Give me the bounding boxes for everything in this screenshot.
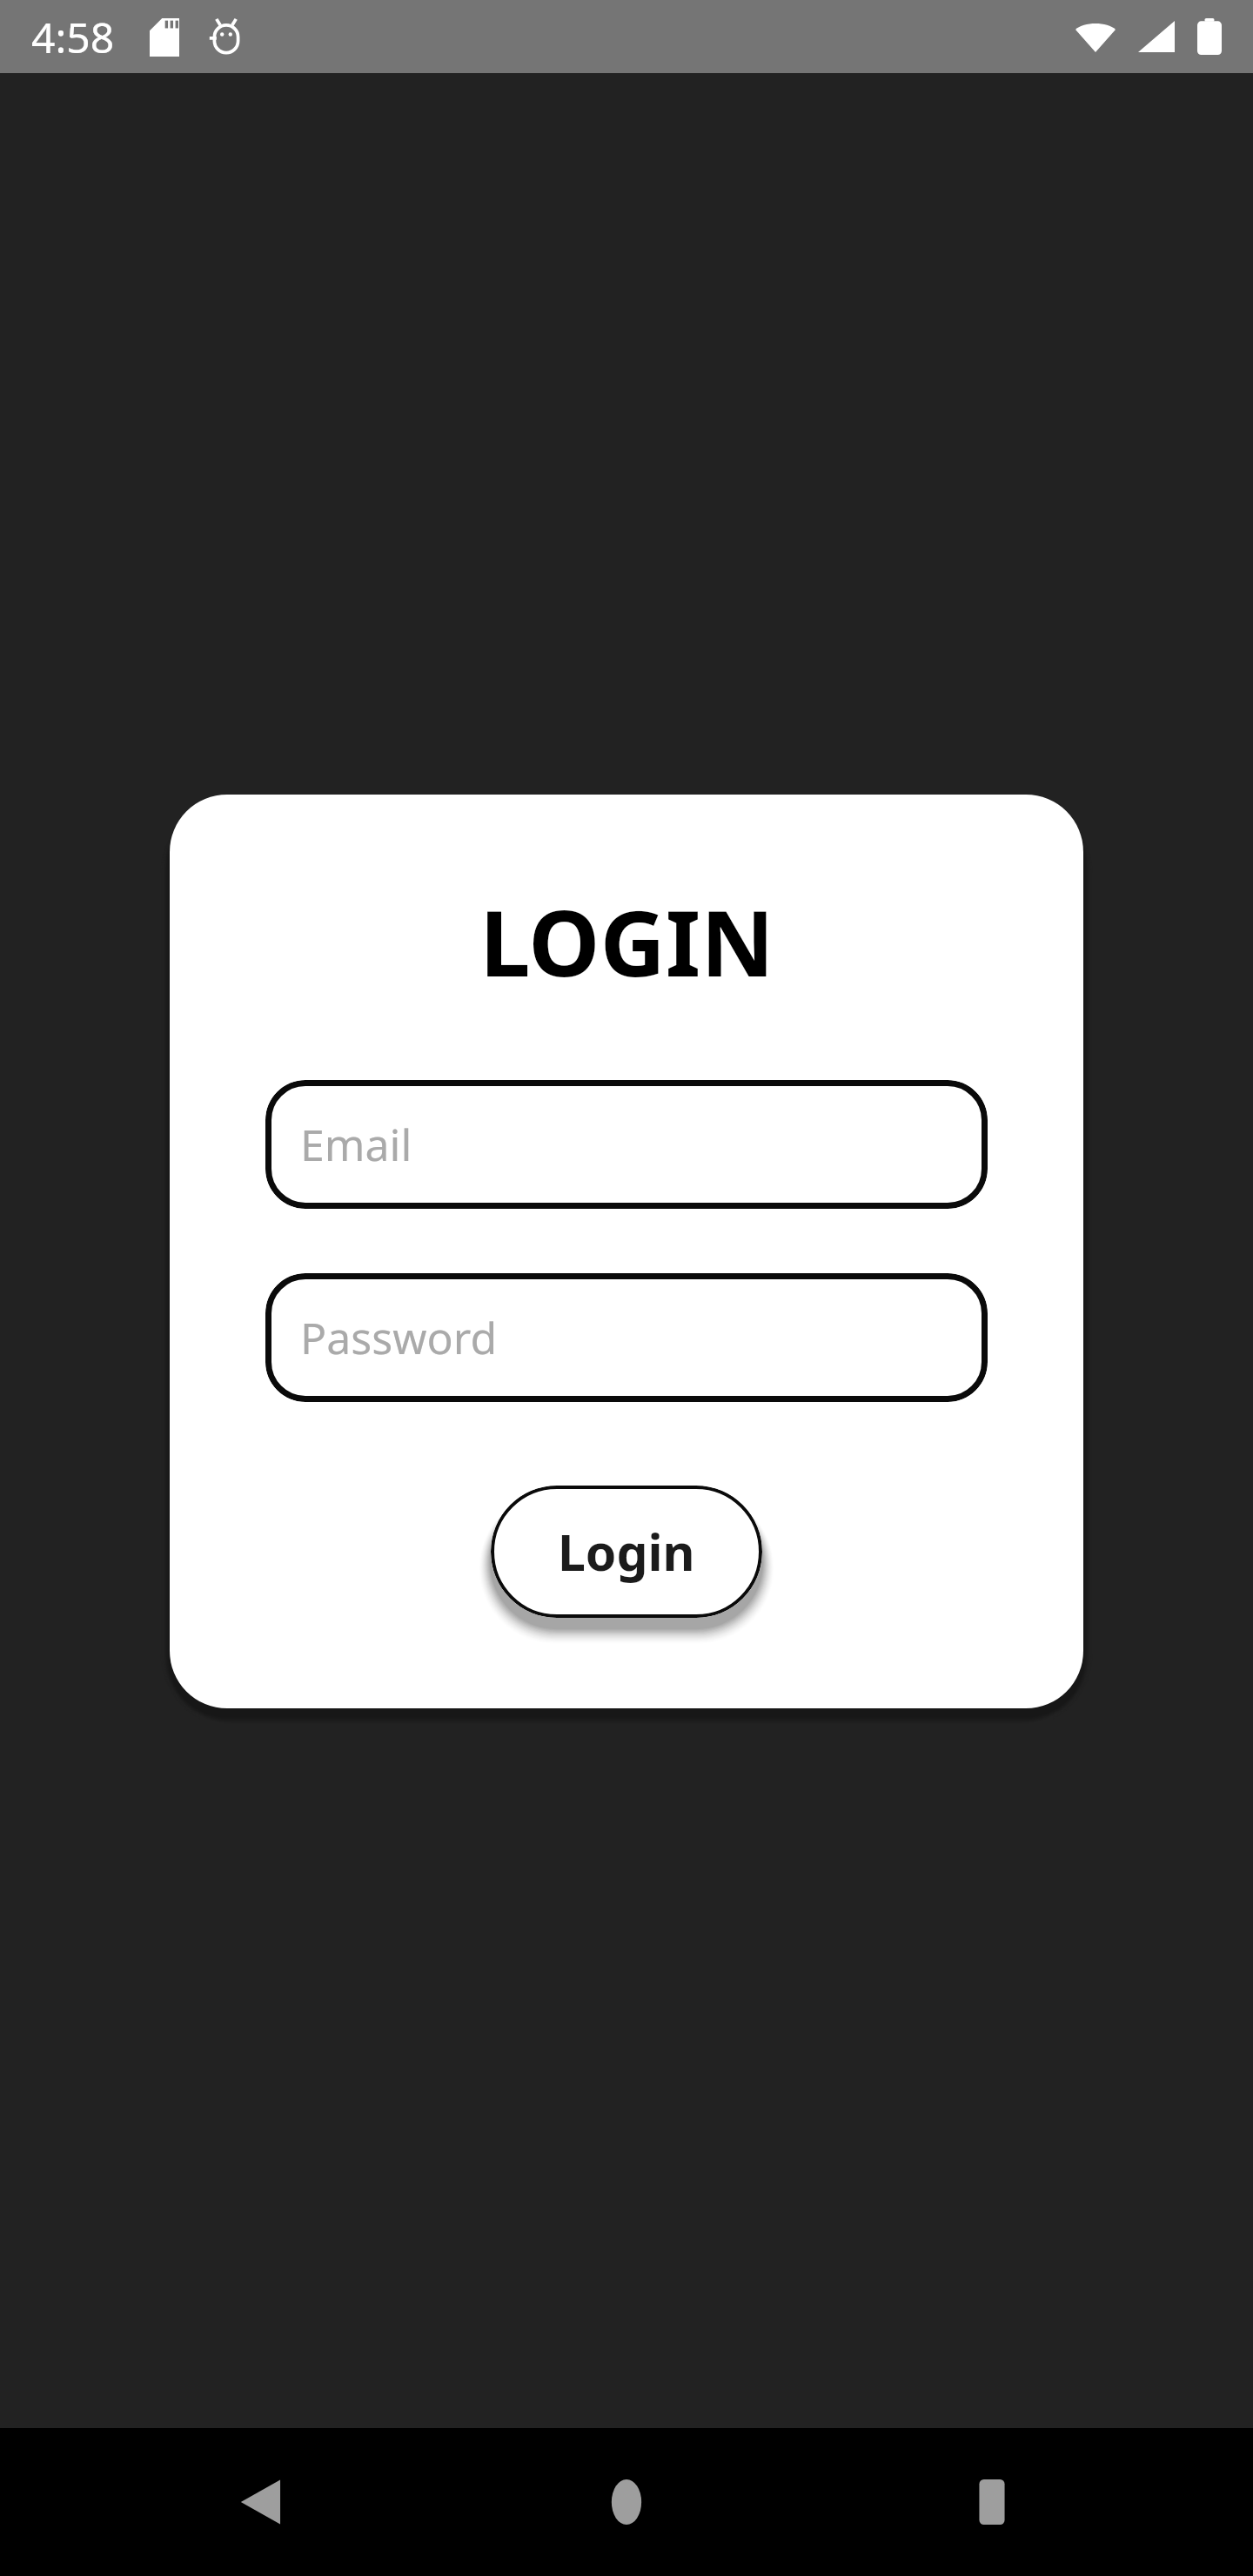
staticText: Login <box>558 1518 695 1586</box>
staticText: Password <box>300 1308 498 1367</box>
button[interactable]: Email <box>265 1080 988 1209</box>
button[interactable]: Home <box>553 2428 700 2576</box>
staticText: 4:58 <box>31 9 115 65</box>
button[interactable]: Recent apps <box>918 2428 1066 2576</box>
staticText: LOGIN <box>479 880 774 1003</box>
staticText: Email <box>300 1115 412 1174</box>
button[interactable]: Back <box>187 2428 335 2576</box>
button[interactable]: Password <box>265 1273 988 1402</box>
button[interactable]: Login <box>491 1486 762 1618</box>
